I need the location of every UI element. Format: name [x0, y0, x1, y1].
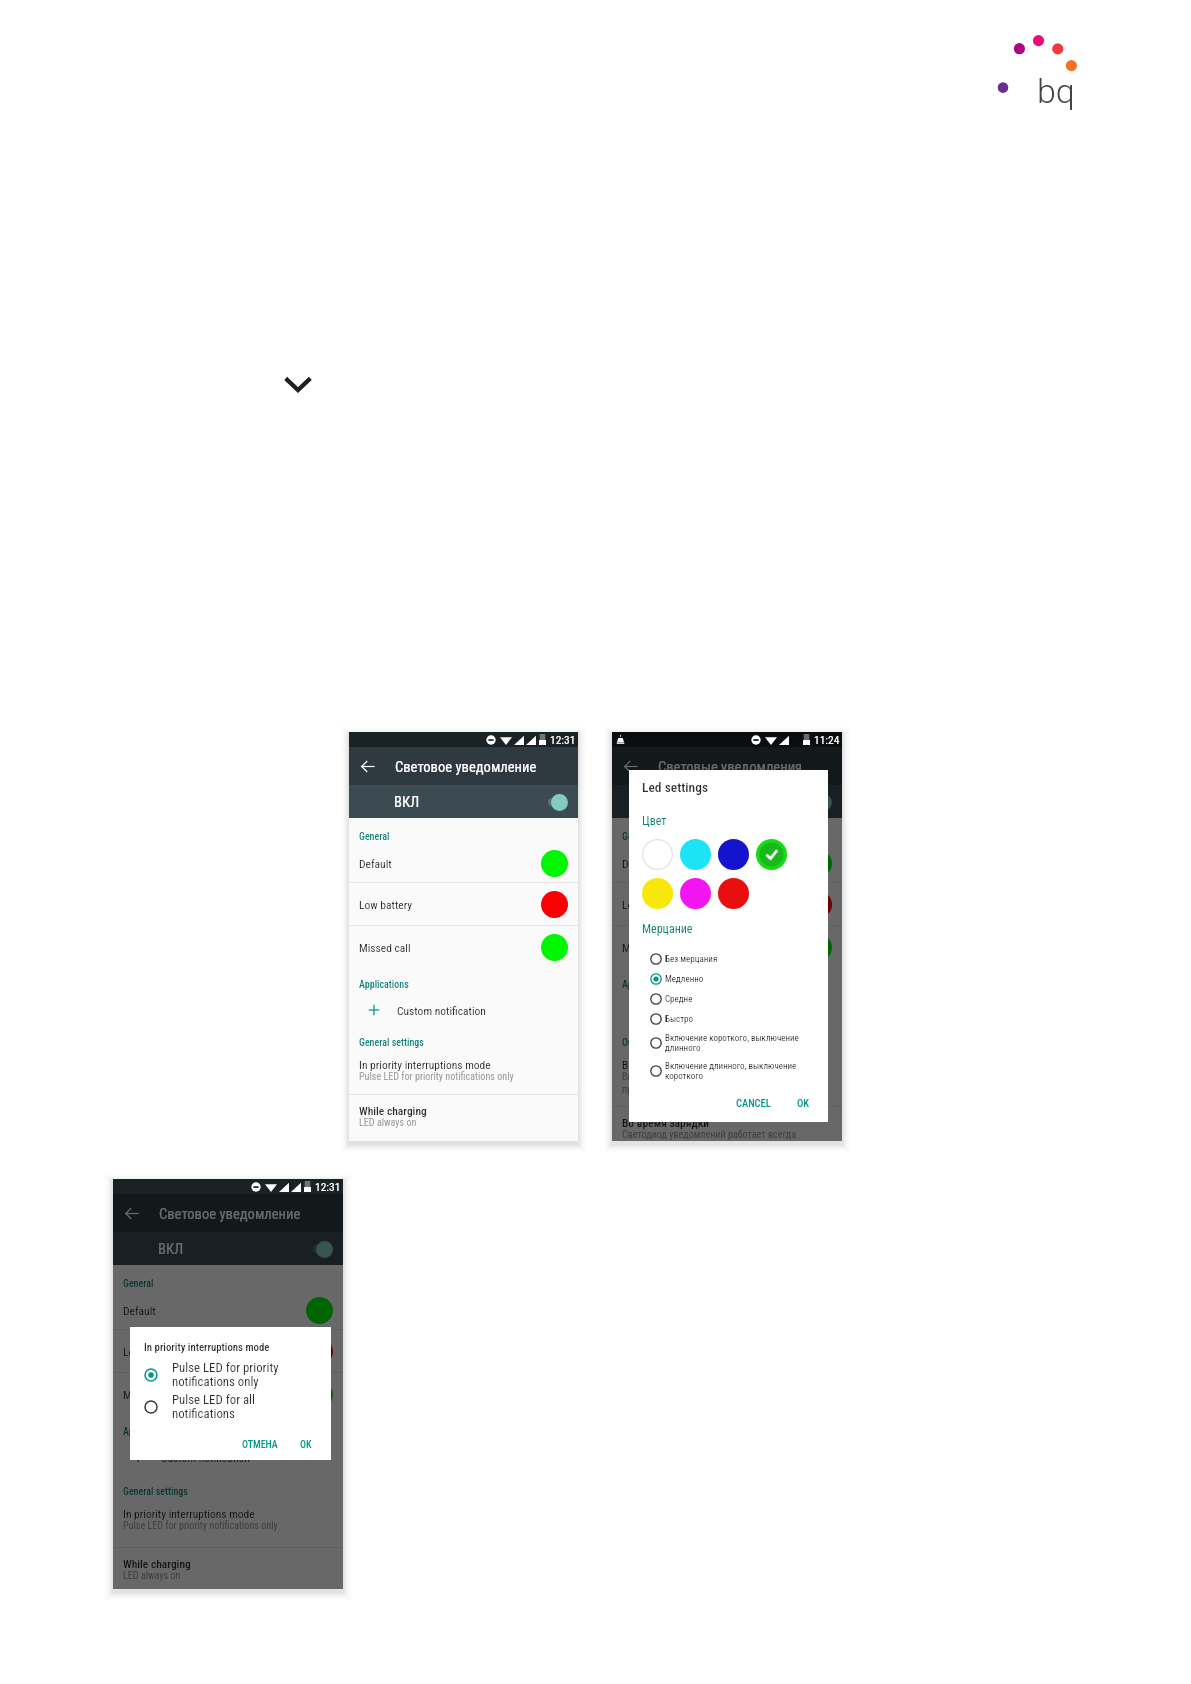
staticText: Applications	[123, 1426, 343, 1438]
staticText: Цвет	[642, 814, 667, 828]
staticText: General	[359, 831, 578, 843]
button[interactable]: White	[642, 839, 673, 870]
button[interactable]: Magenta	[680, 878, 711, 909]
button[interactable]: Включение короткого, выключение длинного	[642, 1029, 818, 1057]
button[interactable]: ОТМЕНА	[237, 1435, 283, 1455]
staticText: Pulse LED for priority notifications onl…	[172, 1360, 279, 1389]
button[interactable]: Red	[718, 878, 749, 909]
button[interactable]: Во время зарядки	[612, 1116, 842, 1141]
staticText: В режиме приоритетных прерываний	[622, 1058, 801, 1071]
button[interactable]: OK	[791, 1092, 816, 1114]
staticText: Custom notification	[161, 1451, 250, 1464]
button[interactable]: Low battery	[349, 883, 578, 925]
button[interactable]: Pulse LED for all notifications	[144, 1392, 321, 1421]
button[interactable]: Green, selected	[756, 839, 787, 870]
button[interactable]: While charging	[113, 1557, 343, 1582]
button[interactable]: Missed call	[612, 926, 842, 968]
button[interactable]: Без мерцания	[642, 949, 818, 969]
staticText: Средне	[665, 994, 693, 1005]
staticText: ВКЛ	[158, 1240, 184, 1257]
button[interactable]: Missed call	[349, 926, 578, 968]
staticText: Led settings	[642, 779, 709, 795]
staticText: General settings	[359, 1037, 578, 1049]
button[interactable]: Low battery	[612, 883, 842, 925]
button[interactable]: Медленно	[642, 969, 818, 989]
button[interactable]: Back	[620, 756, 640, 776]
staticText: Applications	[359, 979, 578, 991]
staticText: In priority interruptions mode	[144, 1341, 270, 1354]
staticText: ВКЛ	[394, 793, 420, 810]
staticText: LED always on	[123, 1570, 181, 1582]
button[interactable]: В режиме приоритетных прерываний	[612, 1058, 842, 1095]
staticText: In priority interruptions mode	[359, 1058, 491, 1071]
staticText: Missed call	[123, 1388, 175, 1401]
button[interactable]: Включение длинного, выключение короткого	[642, 1057, 818, 1085]
button[interactable]: Back	[357, 756, 377, 776]
button[interactable]: While charging	[349, 1104, 578, 1129]
staticText: Без мерцания	[665, 954, 718, 965]
button[interactable]: Custom notification	[113, 1449, 343, 1465]
button[interactable]: In priority interruptions mode	[349, 1058, 578, 1083]
staticText: 12:31	[315, 1180, 341, 1193]
staticText: While charging	[123, 1557, 191, 1570]
button[interactable]: Cyan	[680, 839, 711, 870]
staticText: Default	[622, 857, 655, 870]
button[interactable]: ВКЛ	[612, 785, 842, 818]
staticText: General	[123, 1278, 343, 1290]
button[interactable]: In priority interruptions mode	[113, 1507, 343, 1532]
button[interactable]: Custom notification	[612, 1002, 842, 1018]
staticText: Включать светодиод только для приоритетн…	[622, 1071, 759, 1095]
button[interactable]: Default	[349, 845, 578, 882]
staticText: Applications	[622, 979, 842, 991]
staticText: General settings	[123, 1486, 343, 1498]
staticText: Светодиод уведомлений работает всегда	[622, 1129, 797, 1141]
button[interactable]: Back	[121, 1203, 141, 1223]
button[interactable]: Yellow	[642, 878, 673, 909]
button[interactable]: Default	[612, 845, 842, 882]
staticText: Custom notification	[397, 1004, 486, 1017]
button[interactable]: Missed call	[113, 1373, 343, 1415]
staticText: General	[622, 831, 842, 843]
staticText: Световое уведомление	[395, 758, 537, 775]
button[interactable]: Custom notification	[349, 1002, 578, 1018]
staticText: Low battery	[359, 898, 413, 911]
button[interactable]: ВКЛ	[349, 785, 578, 818]
staticText: LED always on	[359, 1117, 417, 1129]
staticText: Low battery	[622, 898, 676, 911]
staticText: Общие настройки	[622, 1037, 842, 1049]
staticText: Медленно	[665, 974, 704, 985]
staticText: Default	[123, 1304, 156, 1317]
staticText: In priority interruptions mode	[123, 1507, 255, 1520]
staticText: bq	[1037, 71, 1075, 111]
button[interactable]: Средне	[642, 989, 818, 1009]
button[interactable]: Default	[113, 1292, 343, 1329]
button[interactable]: OK	[295, 1435, 317, 1455]
staticText: 12:31	[550, 733, 576, 746]
staticText: Pulse LED for priority notifications onl…	[359, 1071, 514, 1083]
staticText: While charging	[359, 1104, 427, 1117]
button[interactable]: Pulse LED for priority notifications onl…	[144, 1360, 321, 1389]
button[interactable]: Быстро	[642, 1009, 818, 1029]
button[interactable]: Blue	[718, 839, 749, 870]
staticText: Low battery	[123, 1345, 177, 1358]
button[interactable]: ВКЛ	[113, 1232, 343, 1265]
staticText: Мерцание	[642, 922, 693, 936]
staticText: ОТМЕНА	[242, 1439, 278, 1451]
staticText: Световые уведомления	[658, 758, 803, 775]
staticText: OK	[300, 1439, 312, 1451]
staticText: Включение короткого, выключение длинного	[665, 1033, 818, 1053]
staticText: Быстро	[665, 1014, 694, 1025]
staticText: Missed call	[622, 941, 674, 954]
staticText: Pulse LED for all notifications	[172, 1392, 255, 1421]
staticText: Custom notification	[660, 1004, 749, 1017]
staticText: Включение длинного, выключение короткого	[665, 1061, 818, 1081]
button[interactable]: Low battery	[113, 1330, 343, 1372]
staticText: Missed call	[359, 941, 411, 954]
button[interactable]: CANCEL	[730, 1092, 777, 1114]
staticText: CANCEL	[736, 1097, 771, 1109]
staticText: Во время зарядки	[622, 1116, 710, 1129]
staticText: 11:24	[814, 733, 840, 746]
staticText: Default	[359, 857, 392, 870]
staticText: Световое уведомление	[159, 1205, 301, 1222]
